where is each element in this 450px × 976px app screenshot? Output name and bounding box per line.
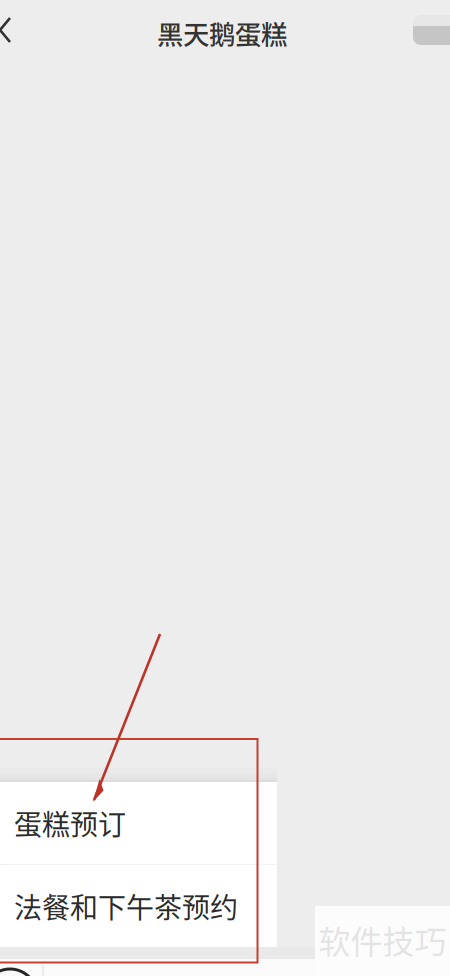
button[interactable]: 法餐和下午茶预约: [0, 865, 277, 947]
button[interactable]: Back: [0, 0, 34, 60]
staticText: 软件技巧: [318, 917, 446, 963]
button[interactable]: 蛋糕预订: [0, 782, 277, 864]
staticText: 蛋糕预订: [14, 803, 126, 843]
button[interactable]: More options: [413, 0, 450, 60]
staticText: 黑天鹅蛋糕: [157, 14, 287, 52]
staticText: 法餐和下午茶预约: [14, 886, 238, 926]
